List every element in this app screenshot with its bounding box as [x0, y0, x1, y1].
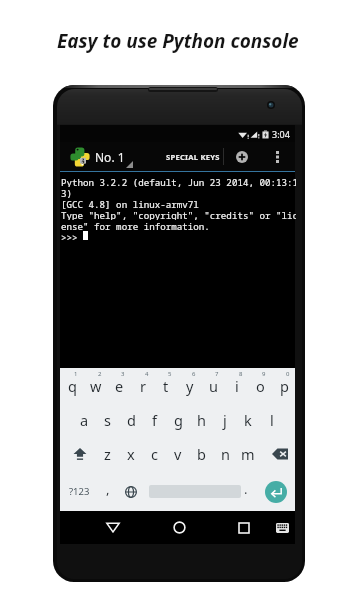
button[interactable]: s [95, 404, 119, 438]
button[interactable]: f [142, 404, 166, 438]
button[interactable]: 4 [131, 368, 155, 404]
staticText: r [140, 376, 146, 396]
button[interactable]: n [213, 438, 237, 472]
staticText: s [104, 410, 111, 430]
staticText: b [197, 444, 206, 464]
button[interactable]: , [97, 472, 119, 511]
staticText: 2 [98, 370, 102, 378]
button[interactable]: 2 [84, 368, 108, 404]
staticText: 0 [286, 370, 290, 378]
staticText: w [90, 376, 102, 396]
button[interactable]: Back [90, 511, 135, 544]
button[interactable]: z [95, 438, 119, 472]
staticText: d [127, 410, 136, 430]
staticText: g [174, 410, 183, 430]
staticText: i [235, 376, 239, 396]
button[interactable]: b [189, 438, 213, 472]
button[interactable]: Home [157, 511, 202, 544]
staticText: u [209, 376, 218, 396]
staticText: , [106, 480, 110, 498]
staticText: t [163, 376, 169, 396]
staticText: 1 [74, 370, 78, 378]
staticText: SPECIAL KEYS [166, 152, 220, 162]
staticText: c [151, 444, 158, 464]
staticText: m [241, 444, 255, 464]
button[interactable]: SPECIAL KEYS [157, 142, 223, 171]
staticText: y [186, 376, 194, 396]
staticText: l [270, 410, 274, 430]
button[interactable]: 3 [107, 368, 131, 404]
button[interactable]: 6 [178, 368, 202, 404]
staticText: a [80, 410, 89, 430]
button[interactable]: d [119, 404, 143, 438]
staticText: v [174, 444, 182, 464]
staticText: 6 [192, 370, 196, 378]
staticText: Easy to use Python console [57, 28, 299, 54]
button[interactable]: Recents [221, 511, 266, 544]
button[interactable]: ?123 [61, 472, 98, 511]
staticText: 3 [121, 370, 125, 378]
button[interactable]: . [235, 472, 257, 511]
button[interactable]: 5 [154, 368, 178, 404]
staticText: n [221, 444, 230, 464]
button[interactable]: m [236, 438, 260, 472]
staticText: o [256, 376, 265, 396]
button[interactable]: Switch keyboard [265, 511, 299, 544]
button[interactable]: 0 [272, 368, 296, 404]
staticText: q [68, 376, 77, 396]
staticText: j [223, 410, 227, 430]
staticText: [GCC 4.8] on linux-armv7l [61, 198, 199, 209]
staticText: 3:04 [272, 128, 290, 140]
button[interactable]: c [142, 438, 166, 472]
button[interactable]: Shift [60, 438, 95, 472]
staticText: >>> [61, 231, 78, 242]
staticText: z [104, 444, 111, 464]
staticText: 5 [168, 370, 172, 378]
staticText: p [280, 376, 289, 396]
staticText: 4 [145, 370, 149, 378]
button[interactable]: x [119, 438, 143, 472]
staticText: No. 1 [95, 149, 125, 165]
button[interactable]: h [189, 404, 213, 438]
staticText: k [244, 410, 252, 430]
staticText: 8 [239, 370, 243, 378]
button[interactable]: Enter [257, 472, 295, 511]
staticText: x [127, 444, 135, 464]
button[interactable] [143, 472, 247, 511]
button[interactable]: k [236, 404, 260, 438]
button[interactable]: No. 1 [60, 142, 139, 171]
staticText: ense" for more information. [61, 220, 210, 231]
staticText: h [197, 410, 206, 430]
staticText: . [244, 480, 248, 498]
button[interactable]: g [166, 404, 190, 438]
button[interactable]: Backspace [260, 438, 295, 472]
button[interactable]: j [213, 404, 237, 438]
button[interactable]: Add [224, 142, 259, 171]
staticText: 7 [215, 370, 219, 378]
staticText: f [152, 410, 157, 430]
staticText: 3) [61, 187, 73, 198]
button[interactable]: 8 [225, 368, 249, 404]
button[interactable]: 9 [248, 368, 272, 404]
button[interactable]: a [72, 404, 96, 438]
button[interactable]: l [260, 404, 284, 438]
staticText: 9 [262, 370, 266, 378]
staticText: Type "help", "copyright", "credits" or "… [61, 209, 296, 220]
button[interactable]: 1 [60, 368, 84, 404]
staticText: ?123 [69, 485, 90, 498]
button[interactable]: More options [259, 142, 295, 171]
button[interactable]: v [166, 438, 190, 472]
staticText: Python 3.2.2 (default, Jun 23 2014, 00:1… [61, 176, 296, 187]
staticText: e [115, 376, 124, 396]
button[interactable]: Change language [119, 472, 143, 511]
button[interactable]: 7 [201, 368, 225, 404]
